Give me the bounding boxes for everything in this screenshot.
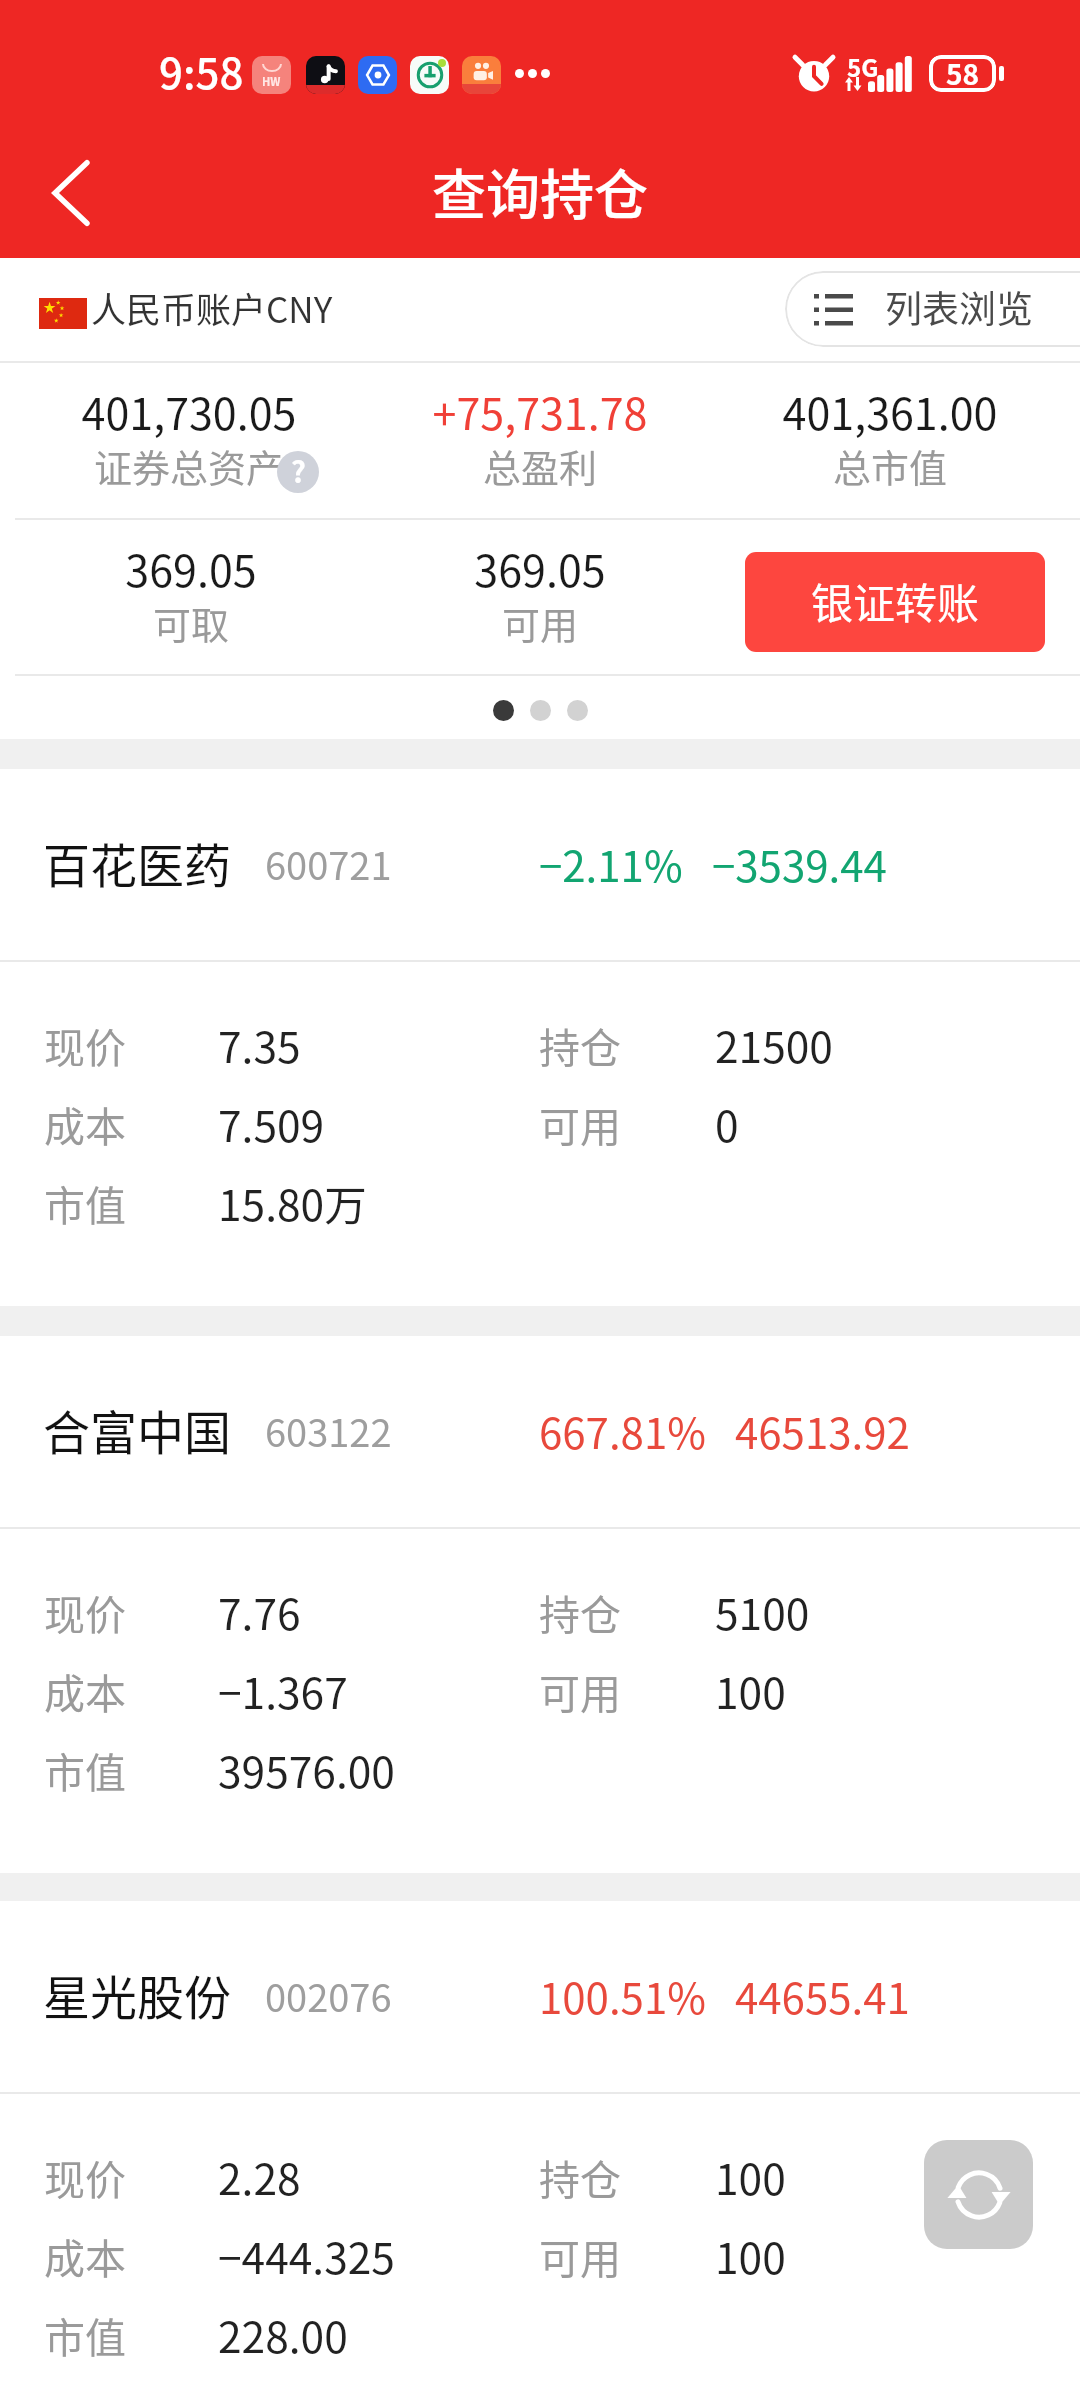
staticText: 可用 xyxy=(539,1094,621,1153)
staticText: 市值 xyxy=(44,1740,126,1799)
staticText: HW xyxy=(262,73,281,89)
staticText: 可用 xyxy=(290,595,790,650)
staticText: 5G xyxy=(847,49,879,84)
staticText: 369.05 xyxy=(290,537,790,599)
staticText: 5100 xyxy=(715,1581,810,1643)
staticText: 总盈利 xyxy=(290,438,790,493)
staticText: 星光股份 xyxy=(43,1960,231,2028)
button[interactable]: 列表浏览 xyxy=(785,271,1080,347)
staticText: 现价 xyxy=(44,2147,126,2206)
staticText: +75,731.78 xyxy=(290,380,790,442)
staticText: 0 xyxy=(715,1093,739,1155)
staticText: 603122 xyxy=(265,1403,392,1458)
button[interactable]: 星光股份 xyxy=(0,1901,1080,2092)
staticText: 369.05 xyxy=(0,537,441,599)
staticText: 39576.00 xyxy=(218,1739,395,1801)
staticText: ? xyxy=(291,451,306,491)
staticText: 成本 xyxy=(44,2226,126,2285)
staticText: 市值 xyxy=(44,2305,126,2364)
staticText: 可用 xyxy=(539,1661,621,1720)
staticText: 可用 xyxy=(539,2226,621,2285)
staticText: 667.81% xyxy=(539,1400,706,1461)
staticText: 7.76 xyxy=(218,1581,301,1643)
staticText: 21500 xyxy=(715,1014,833,1076)
staticText: 现价 xyxy=(44,1582,126,1641)
staticText: 银证转账 xyxy=(811,570,980,631)
staticText: 46513.92 xyxy=(735,1400,910,1461)
staticText: 总市值 xyxy=(640,438,1080,493)
staticText: 持仓 xyxy=(539,1015,621,1074)
staticText: 228.00 xyxy=(218,2304,348,2366)
staticText: 百花医药 xyxy=(43,828,231,896)
staticText: 人民币账户CNY xyxy=(91,282,333,333)
staticText: −1.367 xyxy=(218,1660,348,1722)
staticText: 100 xyxy=(715,2146,786,2208)
staticText: 持仓 xyxy=(539,2147,621,2206)
staticText: 列表浏览 xyxy=(885,280,1033,334)
staticText: 401,730.05 xyxy=(0,380,439,442)
staticText: 44655.41 xyxy=(735,1965,910,2026)
staticText: 7.509 xyxy=(218,1093,325,1155)
button[interactable]: 百花医药 xyxy=(0,769,1080,960)
staticText: 2.28 xyxy=(218,2146,301,2208)
staticText: 可取 xyxy=(0,595,441,650)
staticText: 600721 xyxy=(265,836,392,891)
staticText: 58 xyxy=(946,55,980,90)
button[interactable]: Refresh xyxy=(924,2140,1033,2249)
staticText: −3539.44 xyxy=(712,833,887,894)
staticText: 15.80万 xyxy=(218,1172,367,1234)
staticText: 100.51% xyxy=(539,1965,706,2026)
button[interactable]: Back xyxy=(12,133,132,253)
staticText: 查询持仓 xyxy=(432,152,648,230)
staticText: 7.35 xyxy=(218,1014,301,1076)
button[interactable]: 合富中国 xyxy=(0,1336,1080,1527)
staticText: 现价 xyxy=(44,1015,126,1074)
staticText: 市值 xyxy=(44,1173,126,1232)
staticText: 持仓 xyxy=(539,1582,621,1641)
staticText: −444.325 xyxy=(218,2225,395,2287)
staticText: 002076 xyxy=(265,1968,392,2023)
button[interactable]: 银证转账 xyxy=(745,552,1045,652)
staticText: 成本 xyxy=(44,1661,126,1720)
staticText: 证券总资产 xyxy=(0,438,439,493)
staticText: 成本 xyxy=(44,1094,126,1153)
staticText: 401,361.00 xyxy=(640,380,1080,442)
staticText: 100 xyxy=(715,1660,786,1722)
staticText: 合富中国 xyxy=(43,1395,231,1463)
staticText: 100 xyxy=(715,2225,786,2287)
staticText: −2.11% xyxy=(539,833,683,894)
staticText: 9:58 xyxy=(159,40,244,101)
